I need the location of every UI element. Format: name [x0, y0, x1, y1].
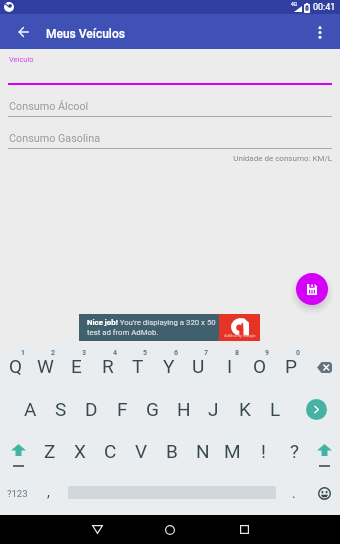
button[interactable]: 9	[244, 346, 275, 388]
staticText: V	[135, 440, 148, 462]
button[interactable]: Backspace	[309, 346, 340, 388]
staticText: 2	[51, 349, 56, 357]
button[interactable]: ?123	[0, 472, 34, 514]
staticText: 0	[296, 349, 301, 357]
button[interactable]: G	[137, 388, 168, 430]
staticText: S	[55, 398, 67, 420]
staticText: L	[270, 398, 281, 420]
staticText: AdMob by Google	[224, 333, 256, 338]
staticText: A	[24, 398, 37, 420]
button[interactable]: L	[260, 388, 291, 430]
button[interactable]: M	[217, 430, 248, 472]
staticText: .	[292, 485, 296, 501]
button[interactable]: Z	[34, 430, 65, 472]
staticText: Z	[44, 440, 56, 462]
button[interactable]: 3	[61, 346, 92, 388]
staticText: 1	[21, 349, 26, 357]
staticText: B	[166, 440, 178, 462]
staticText: G	[146, 398, 159, 420]
staticText: O	[253, 355, 267, 377]
staticText: X	[74, 440, 86, 462]
button[interactable]: More options	[305, 17, 335, 47]
button[interactable]: H	[168, 388, 199, 430]
staticText: !	[261, 440, 266, 462]
staticText: U	[192, 355, 205, 377]
staticText: 4G	[291, 1, 298, 7]
staticText: 6	[174, 349, 179, 357]
button[interactable]: X	[64, 430, 95, 472]
button[interactable]: Home	[155, 515, 185, 544]
staticText: 00:41	[313, 2, 336, 13]
button[interactable]: 8	[214, 346, 245, 388]
staticText: 9	[265, 349, 270, 357]
staticText: F	[117, 398, 128, 420]
staticText: R	[102, 355, 114, 377]
staticText: Nice job! You're displaying a 320 x 50	[87, 318, 216, 327]
button[interactable]: 4	[92, 346, 123, 388]
button[interactable]: 2	[30, 346, 61, 388]
button[interactable]: 0	[275, 346, 306, 388]
button[interactable]: C	[95, 430, 126, 472]
staticText: ?	[290, 440, 299, 462]
staticText: ?123	[7, 488, 28, 499]
staticText: I	[227, 355, 233, 377]
staticText: W	[37, 355, 54, 377]
button[interactable]: 5	[122, 346, 153, 388]
button[interactable]: 1	[0, 346, 31, 388]
staticText: 3	[82, 349, 87, 357]
button[interactable]: K	[229, 388, 260, 430]
staticText: P	[285, 355, 297, 377]
button[interactable]: ?	[279, 430, 310, 472]
button[interactable]: Consumo Gasolina	[0, 117, 340, 149]
staticText: 4	[113, 349, 118, 357]
button[interactable]: 6	[153, 346, 184, 388]
staticText: N	[196, 440, 210, 462]
staticText: D	[85, 398, 98, 420]
staticText: K	[239, 398, 251, 420]
button[interactable]: Shift	[2, 430, 34, 472]
button[interactable]: Back	[82, 515, 112, 544]
button[interactable]: S	[45, 388, 76, 430]
staticText: ,	[47, 484, 50, 500]
staticText: Unidade de consumo: KM/L	[0, 154, 332, 163]
staticText: test ad from AdMob.	[87, 328, 159, 337]
button[interactable]: J	[198, 388, 229, 430]
button[interactable]: .	[282, 472, 306, 514]
button[interactable]: Veículo	[0, 52, 340, 85]
staticText: M	[224, 440, 241, 462]
staticText: Consumo Álcool	[9, 100, 89, 113]
staticText: C	[104, 440, 117, 462]
button[interactable]: Recents	[229, 515, 259, 544]
staticText: 5	[143, 349, 148, 357]
staticText: Q	[9, 355, 23, 377]
button[interactable]: Back	[8, 17, 38, 47]
button[interactable]: Enter	[301, 388, 332, 430]
staticText: Y	[163, 355, 175, 377]
staticText: E	[71, 355, 82, 377]
button[interactable]: Save	[296, 273, 328, 305]
button[interactable]: !	[248, 430, 279, 472]
button[interactable]: N	[187, 430, 218, 472]
button[interactable]: D	[76, 388, 107, 430]
button[interactable]: V	[126, 430, 157, 472]
button[interactable]: Shift	[308, 430, 340, 472]
staticText: 8	[235, 349, 240, 357]
button[interactable]: Emoji	[308, 472, 340, 514]
staticText: Veículo	[9, 55, 34, 64]
button[interactable]: A	[15, 388, 46, 430]
button[interactable]: 7	[183, 346, 214, 388]
staticText: T	[132, 355, 144, 377]
button[interactable]: ,	[34, 472, 62, 514]
button[interactable]: Nice job! You're displaying a 320 x 50	[79, 314, 260, 341]
staticText: H	[177, 398, 191, 420]
staticText: Meus Veículos	[46, 27, 125, 41]
button[interactable]: F	[107, 388, 138, 430]
staticText: 7	[204, 349, 209, 357]
staticText: Consumo Gasolina	[9, 132, 101, 145]
button[interactable]: Consumo Álcool	[0, 85, 340, 117]
button[interactable]: B	[156, 430, 187, 472]
staticText: J	[208, 398, 219, 420]
